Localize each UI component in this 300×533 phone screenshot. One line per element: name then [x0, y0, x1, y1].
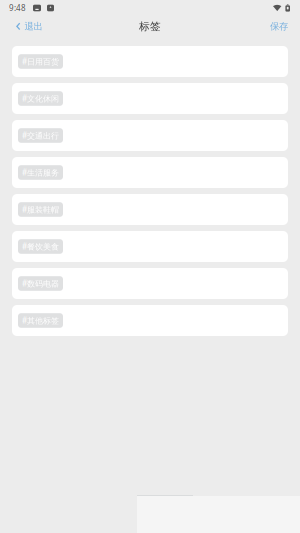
staticText: #服装鞋帽: [22, 204, 59, 215]
staticText: 保存: [270, 21, 288, 32]
button[interactable]: #服装鞋帽: [12, 194, 288, 225]
button[interactable]: #文化休闲: [12, 83, 288, 114]
staticText: #日用百货: [22, 56, 59, 67]
button[interactable]: 保存: [264, 16, 294, 37]
button[interactable]: #餐饮美食: [12, 231, 288, 262]
staticText: 退出: [24, 21, 42, 32]
staticText: #其他标签: [22, 315, 59, 326]
staticText: 标签: [139, 20, 161, 33]
staticText: 9:48: [9, 3, 26, 13]
button[interactable]: #数码电器: [12, 268, 288, 299]
button[interactable]: 退出: [10, 16, 48, 37]
staticText: #餐饮美食: [22, 241, 59, 252]
staticText: #交通出行: [22, 130, 59, 141]
button[interactable]: #交通出行: [12, 120, 288, 151]
staticText: #生活服务: [22, 167, 59, 178]
button[interactable]: #其他标签: [12, 305, 288, 336]
button[interactable]: #日用百货: [12, 46, 288, 77]
staticText: #数码电器: [22, 278, 59, 289]
button[interactable]: #生活服务: [12, 157, 288, 188]
staticText: #文化休闲: [22, 93, 59, 104]
